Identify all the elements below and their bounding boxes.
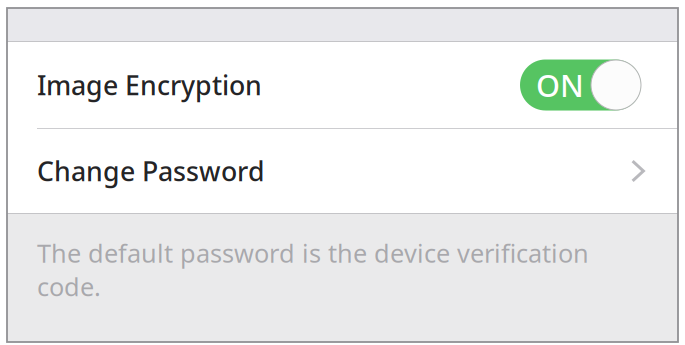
staticText: Image Encryption (37, 67, 262, 103)
staticText: ON (536, 65, 584, 105)
button[interactable]: Image Encryption (7, 42, 678, 128)
staticText: Change Password (37, 153, 265, 189)
button[interactable]: Change Password (7, 129, 678, 213)
staticText: The default password is the device verif… (37, 236, 589, 303)
